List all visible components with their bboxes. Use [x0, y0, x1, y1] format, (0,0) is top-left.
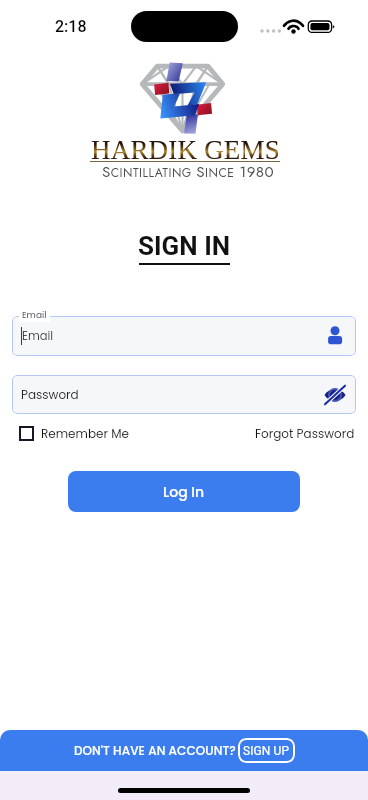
- staticText: SCINTILLATING SINCE 1980: [102, 161, 275, 183]
- button[interactable]: Log In: [68, 471, 300, 512]
- staticText: SIGN IN: [138, 231, 231, 261]
- staticText: Email: [22, 328, 54, 344]
- button[interactable]: Remember Me: [19, 425, 129, 442]
- other: Account: [325, 326, 345, 346]
- button[interactable]: Forgot Password: [255, 425, 355, 442]
- staticText: Remember Me: [41, 425, 129, 442]
- staticText: Email: [22, 309, 47, 322]
- button[interactable]: [12, 316, 356, 356]
- staticText: 2:18: [55, 17, 87, 36]
- staticText: Log In: [163, 482, 205, 502]
- other: Show password: [324, 387, 346, 403]
- button[interactable]: [12, 375, 356, 414]
- button[interactable]: SIGN UP: [238, 738, 295, 763]
- staticText: DON'T HAVE AN ACCOUNT?: [74, 742, 236, 759]
- staticText: HARDIK GEMS: [91, 135, 280, 165]
- staticText: Password: [21, 386, 79, 403]
- staticText: SIGN UP: [243, 744, 290, 758]
- staticText: Forgot Password: [255, 425, 355, 442]
